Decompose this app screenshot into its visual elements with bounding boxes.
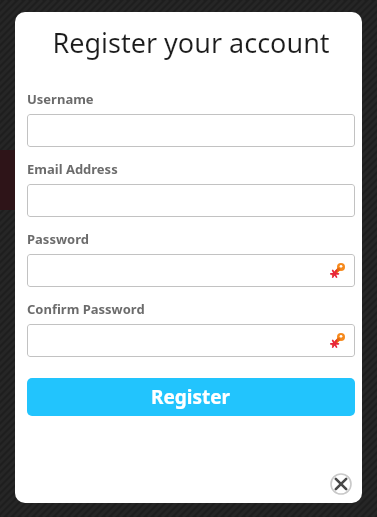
staticText: Confirm Password [27,300,145,318]
button[interactable]: Close [330,473,352,495]
button[interactable]: Password key [27,324,355,357]
staticText: Username [27,90,94,108]
staticText: Register [151,384,231,410]
button[interactable]: Password key [27,254,355,287]
other: Password key [329,331,349,351]
staticText: Register your account [27,24,355,61]
staticText: Email Address [27,160,118,178]
other: Password key [329,261,349,281]
button[interactable] [27,184,355,217]
staticText: Password [27,230,89,248]
button[interactable] [27,114,355,147]
button[interactable]: Register [27,378,355,416]
